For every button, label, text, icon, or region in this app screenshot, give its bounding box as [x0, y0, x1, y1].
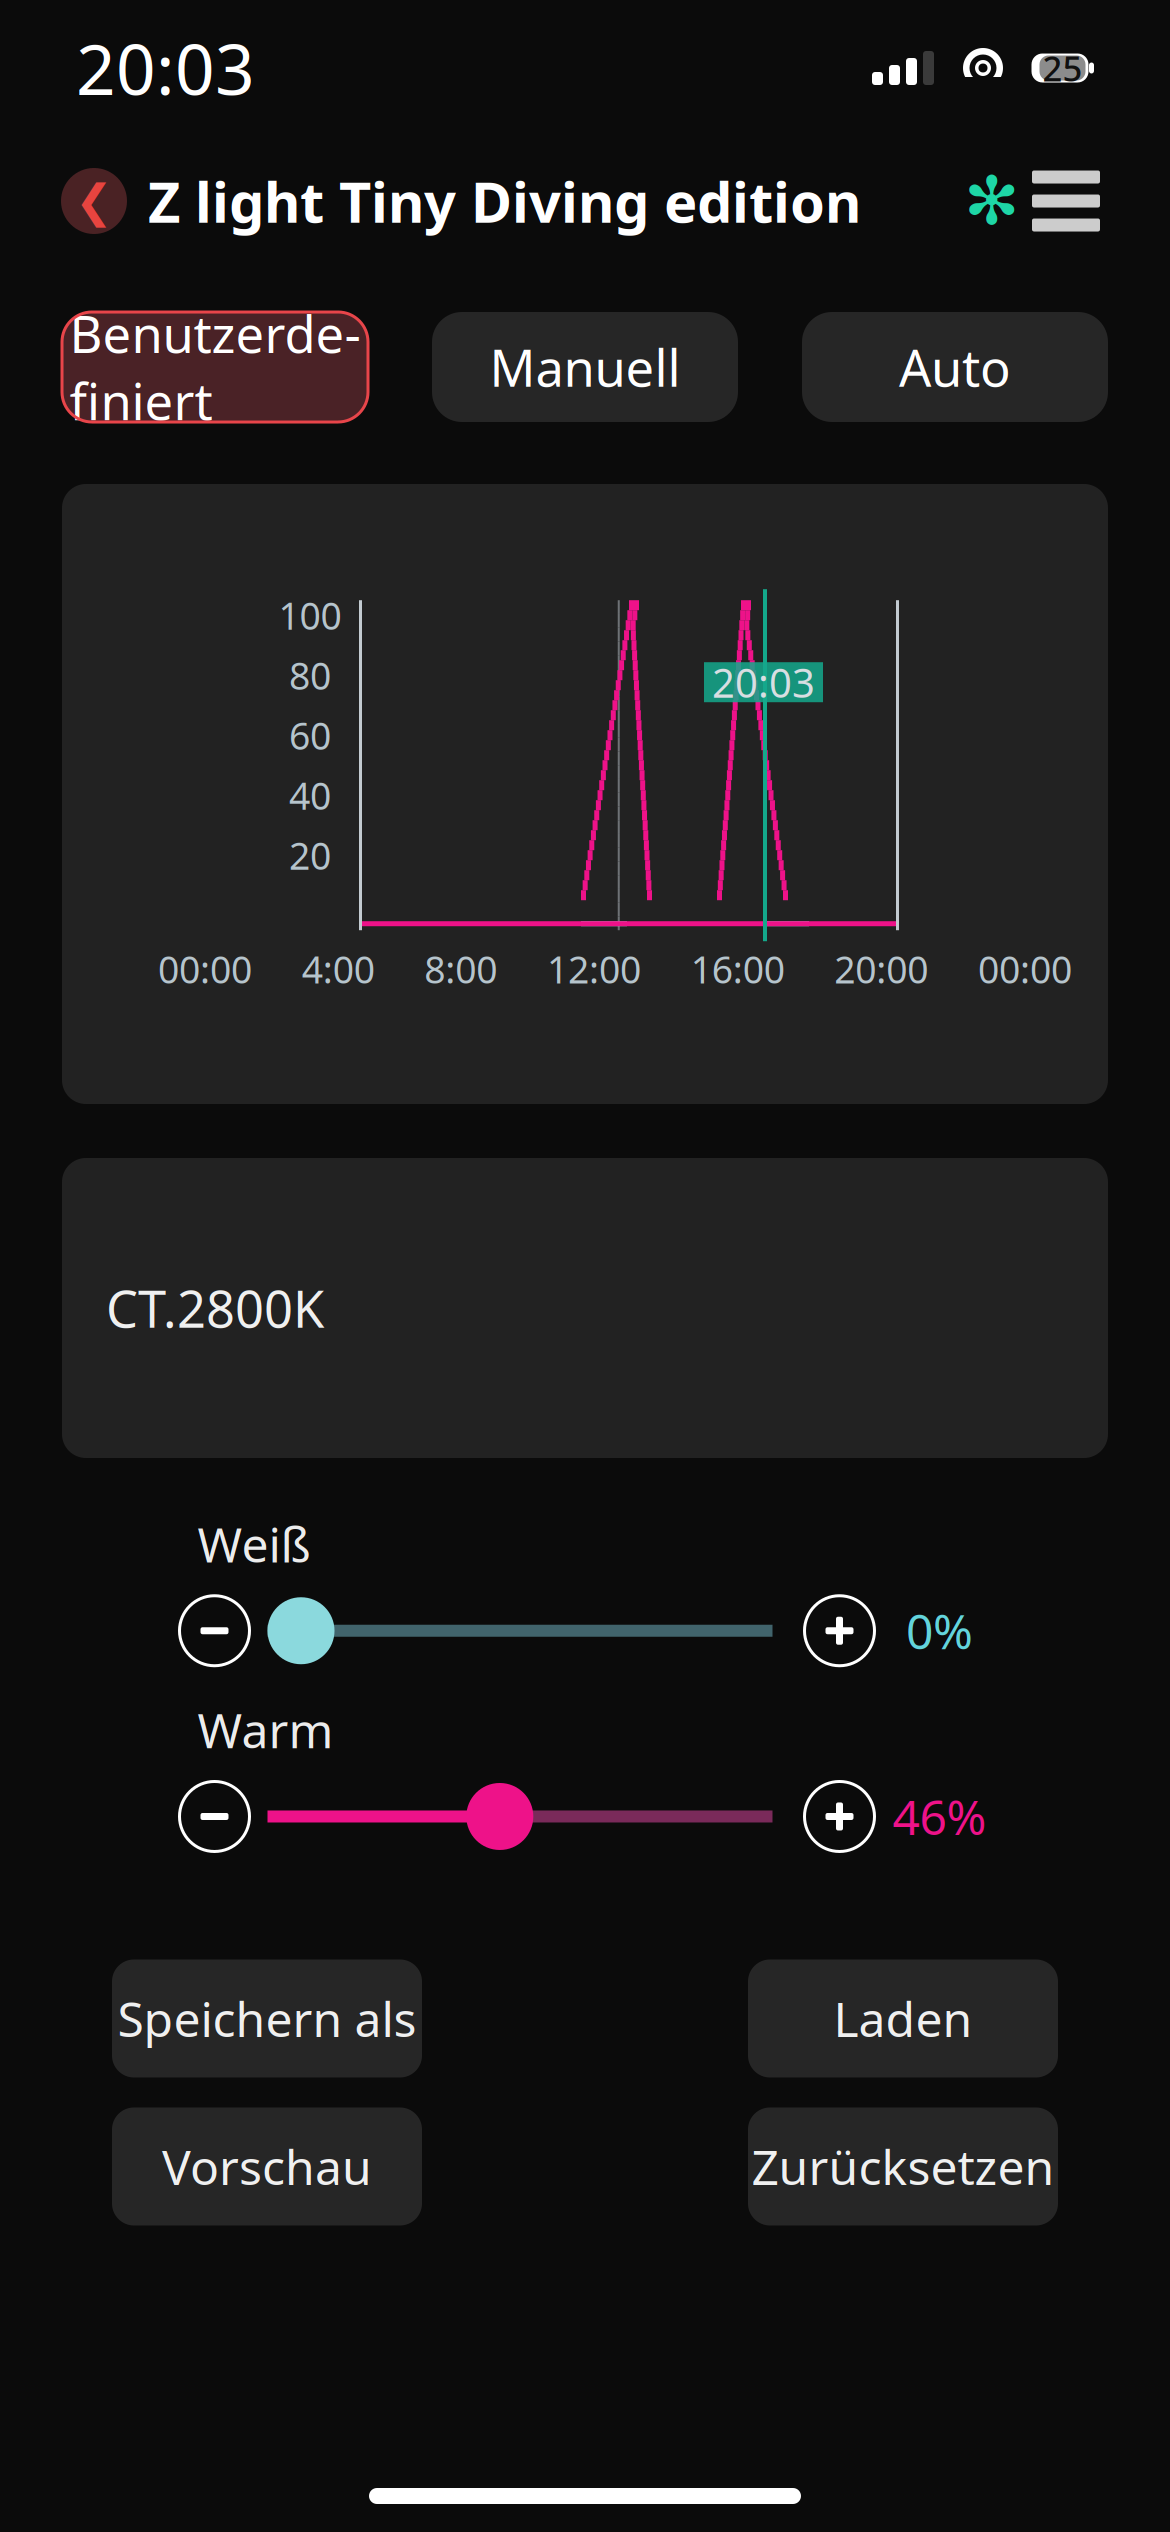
staticText: 20:03 [76, 22, 255, 114]
staticText: 12:00 [547, 944, 641, 994]
staticText: 0% [906, 1599, 973, 1663]
staticText: 4:00 [302, 944, 375, 994]
staticText: Benutzerdefiniert [69, 300, 360, 434]
staticText: 16:00 [691, 944, 785, 994]
button[interactable]: Menu [1020, 165, 1112, 237]
staticText: Vorschau [162, 2135, 372, 2198]
staticText: 40 [289, 770, 331, 820]
staticText: Weiß [197, 1512, 310, 1576]
staticText: 20 [289, 830, 331, 880]
staticText: CT.2800K [106, 1274, 324, 1342]
staticText: ❮ [75, 175, 113, 227]
staticText: 00:00 [158, 944, 252, 994]
staticText: Z light Tiny Diving edition [148, 164, 861, 238]
staticText: 80 [289, 650, 331, 700]
staticText: 60 [289, 710, 331, 760]
staticText: Manuell [489, 333, 680, 401]
button[interactable]: Zurücksetzen [748, 2107, 1058, 2225]
staticText: ✻ [964, 163, 1020, 239]
staticText: Auto [899, 333, 1011, 401]
button[interactable]: Decrease Weiß [175, 1592, 253, 1670]
staticText: 25 [1042, 45, 1082, 91]
staticText: Zurücksetzen [751, 2135, 1054, 2198]
button[interactable]: Bluetooth [964, 168, 1020, 234]
button[interactable]: Benutzerdefiniert [62, 312, 368, 422]
button[interactable]: Increase Warm [800, 1777, 878, 1855]
staticText: 8:00 [424, 944, 497, 994]
staticText: 20:00 [834, 944, 928, 994]
button[interactable]: Vorschau [112, 2107, 422, 2225]
staticText: 00:00 [978, 944, 1072, 994]
button[interactable]: Decrease Warm [175, 1777, 253, 1855]
staticText: 20:03 [712, 656, 815, 709]
button[interactable]: Speichern als [112, 1959, 422, 2077]
staticText: Warm [197, 1698, 333, 1761]
staticText: Speichern als [117, 1987, 416, 2050]
button[interactable]: Back [58, 165, 130, 237]
button[interactable]: Auto [802, 312, 1108, 422]
button[interactable]: Manuell [432, 312, 738, 422]
button[interactable]: Increase Weiß [800, 1592, 878, 1670]
button[interactable]: Laden [748, 1959, 1058, 2077]
staticText: 100 [278, 590, 341, 640]
staticText: Laden [833, 1987, 972, 2050]
staticText: 46% [892, 1785, 986, 1848]
